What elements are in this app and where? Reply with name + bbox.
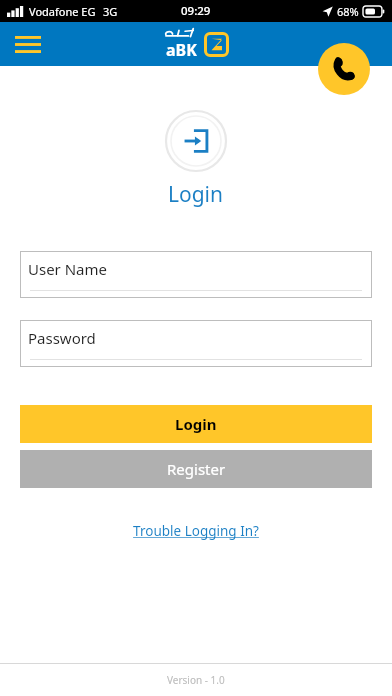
button[interactable]: Register bbox=[20, 450, 372, 488]
button[interactable]: Menu bbox=[10, 26, 46, 62]
staticText: Password bbox=[28, 328, 96, 348]
button[interactable]: User Name bbox=[20, 251, 372, 298]
staticText: Login bbox=[168, 180, 224, 209]
button[interactable]: Call bbox=[318, 43, 370, 95]
staticText: Vodafone EG bbox=[29, 4, 96, 19]
staticText: User Name bbox=[28, 259, 108, 279]
staticText: Version - 1.0 bbox=[167, 673, 225, 687]
staticText: 3G bbox=[103, 4, 118, 19]
staticText: Trouble Logging In? bbox=[133, 522, 259, 540]
button[interactable]: Login bbox=[20, 405, 372, 443]
staticText: 68% bbox=[337, 4, 359, 19]
button[interactable]: Password bbox=[20, 320, 372, 367]
staticText: 09:29 bbox=[181, 3, 211, 19]
button[interactable]: Trouble Logging In? bbox=[133, 522, 259, 540]
staticText: Login bbox=[175, 414, 217, 434]
staticText: aBK bbox=[166, 39, 197, 61]
staticText: Register bbox=[167, 459, 226, 479]
